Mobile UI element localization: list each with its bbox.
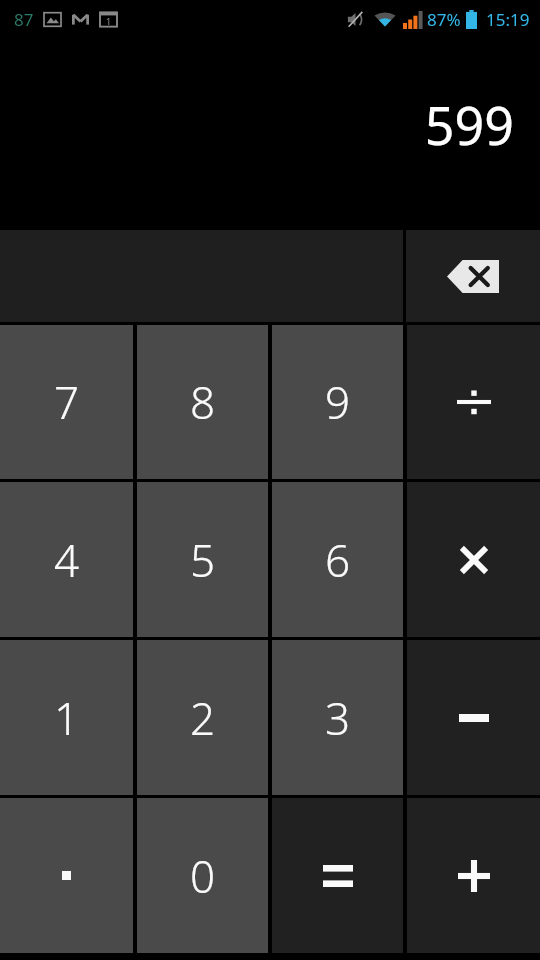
button[interactable]: 4 [0, 482, 133, 637]
button[interactable]: 6 [272, 482, 403, 637]
button[interactable]: 7 [0, 325, 133, 479]
button[interactable] [407, 798, 540, 953]
staticText: 5 [190, 530, 216, 590]
staticText: 87% [427, 8, 461, 31]
button[interactable]: 2 [137, 640, 268, 795]
button[interactable]: Backspace [406, 230, 540, 322]
staticText: 2 [190, 688, 216, 748]
staticText: 87 [14, 8, 34, 31]
button[interactable] [0, 798, 133, 953]
staticText: 6 [325, 530, 351, 590]
staticText: 15:19 [486, 8, 530, 31]
staticText: 3 [325, 688, 351, 748]
button[interactable]: 8 [137, 325, 268, 479]
staticText: 1 [54, 688, 80, 748]
button[interactable]: 1 [0, 640, 133, 795]
button[interactable] [407, 325, 540, 479]
button[interactable] [407, 482, 540, 637]
staticText: 9 [325, 372, 351, 432]
button[interactable]: 3 [272, 640, 403, 795]
button[interactable]: 0 [137, 798, 268, 953]
staticText: 4 [54, 530, 80, 590]
button[interactable]: 5 [137, 482, 268, 637]
staticText: 1 [106, 15, 112, 27]
staticText: 8 [190, 372, 216, 432]
staticText: 599 [424, 89, 514, 160]
button[interactable]: 9 [272, 325, 403, 479]
staticText: 0 [190, 846, 216, 906]
staticText: 7 [54, 372, 80, 432]
button[interactable] [407, 640, 540, 795]
button[interactable] [272, 798, 403, 953]
